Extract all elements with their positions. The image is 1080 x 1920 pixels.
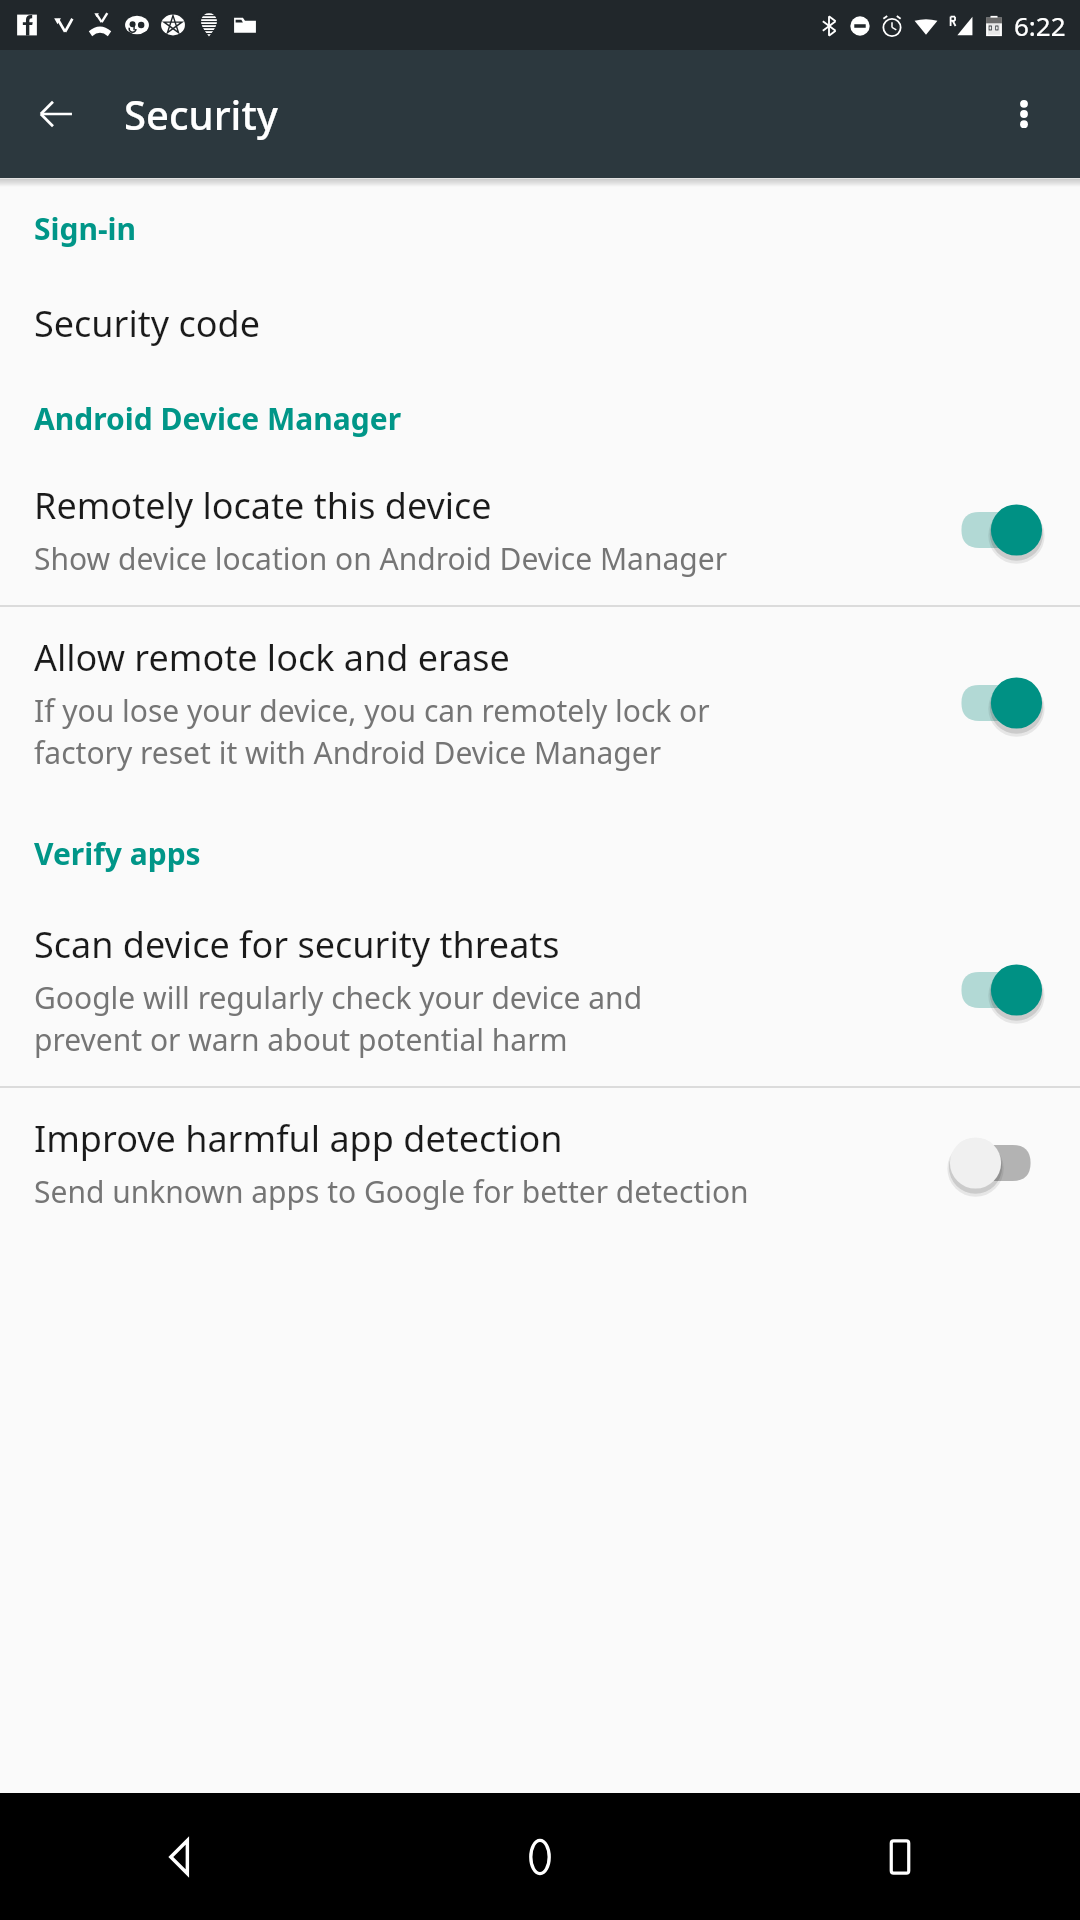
staticText: Improve harmful app detection — [34, 1114, 563, 1163]
button[interactable]: On — [942, 663, 1050, 743]
button[interactable]: Back — [0, 1793, 360, 1920]
staticText: Show device location on Android Device M… — [34, 538, 728, 579]
button[interactable]: Remotely locate this device — [0, 477, 1080, 583]
staticText: Android Device Manager — [34, 398, 402, 439]
staticText: Security code — [34, 299, 260, 348]
button[interactable]: Home — [360, 1793, 720, 1920]
staticText: Sign-in — [34, 208, 137, 249]
staticText: Remotely locate this device — [34, 481, 492, 530]
button[interactable]: Recents — [720, 1793, 1080, 1920]
staticText: Allow remote lock and erase — [34, 633, 510, 682]
staticText: Scan device for security threats — [34, 920, 560, 969]
button[interactable]: Scan device for security threats — [0, 916, 1080, 1064]
staticText: If you lose your device, you can remotel… — [34, 690, 710, 773]
button[interactable]: More options — [988, 78, 1060, 150]
button[interactable]: On — [942, 950, 1050, 1030]
button[interactable]: Security code — [0, 293, 1080, 354]
button[interactable]: Allow remote lock and erase — [0, 629, 1080, 777]
staticText: 6:22 — [1014, 8, 1066, 43]
staticText: Verify apps — [34, 833, 201, 874]
button[interactable]: Off — [942, 1123, 1050, 1203]
button[interactable]: On — [942, 490, 1050, 570]
staticText: Security — [124, 87, 278, 141]
staticText: Google will regularly check your device … — [34, 977, 643, 1060]
button[interactable]: Improve harmful app detection — [0, 1110, 1080, 1216]
button[interactable]: Back — [24, 82, 88, 146]
staticText: Send unknown apps to Google for better d… — [34, 1171, 749, 1212]
